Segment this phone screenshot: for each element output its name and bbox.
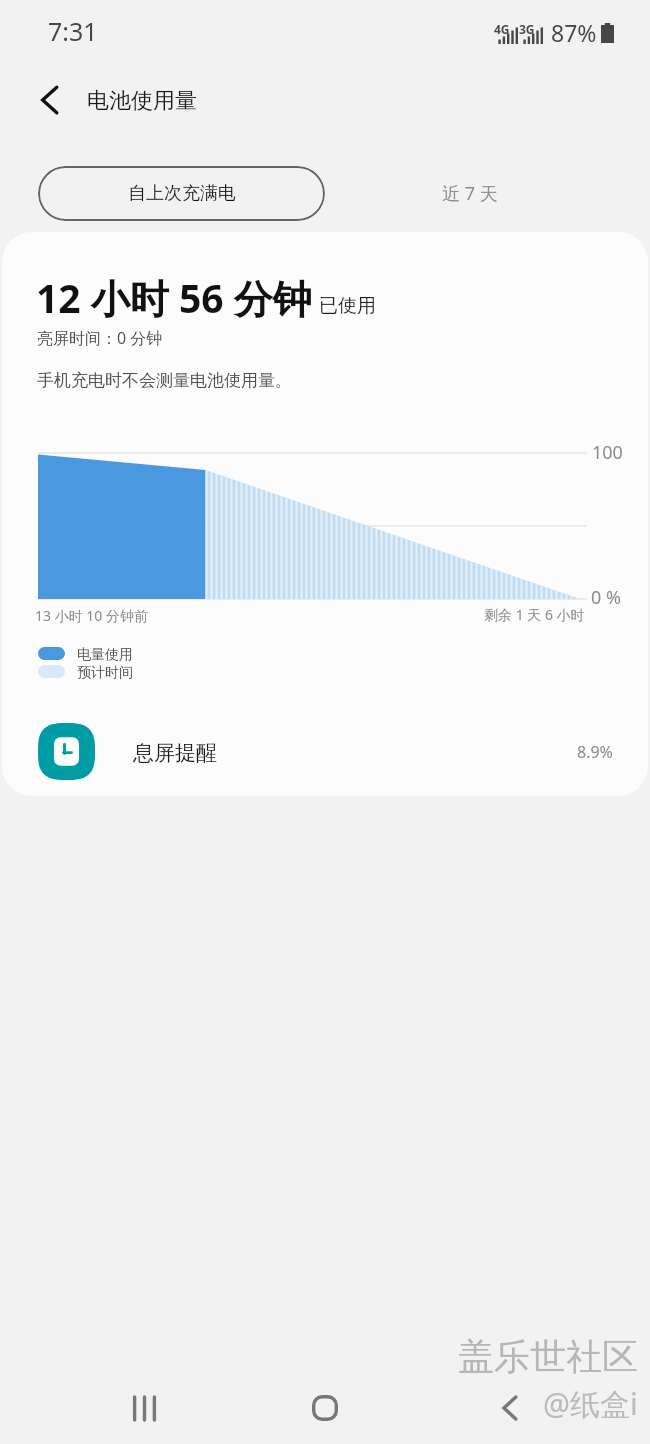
staticText: 预计时间: [77, 664, 133, 682]
button[interactable]: Back: [22, 73, 80, 131]
staticText: 8.9%: [577, 741, 613, 763]
staticText: 电量使用: [77, 646, 133, 664]
staticText: 13 小时 10 分钟前: [35, 606, 148, 625]
button[interactable]: 息屏提醒: [2, 714, 648, 789]
staticText: 3G: [519, 21, 535, 37]
staticText: 4G: [494, 21, 510, 37]
staticText: 剩余 1 天 6 小时: [484, 605, 585, 624]
staticText: 自上次充满电: [128, 182, 236, 205]
button[interactable]: Back: [477, 1374, 545, 1442]
staticText: 手机充电时不会测量电池使用量。: [37, 370, 292, 391]
staticText: 100: [592, 440, 623, 465]
staticText: 87%: [551, 17, 597, 48]
staticText: @纸盒i: [543, 1383, 638, 1424]
staticText: 盖乐世社区: [458, 1334, 638, 1379]
staticText: 亮屏时间：0 分钟: [37, 327, 163, 349]
button[interactable]: Home: [291, 1374, 359, 1442]
button[interactable]: 近 7 天: [390, 166, 550, 221]
staticText: 12 小时 56 分钟: [36, 271, 312, 324]
staticText: 息屏提醒: [133, 740, 217, 766]
button[interactable]: Recents: [110, 1374, 178, 1442]
staticText: 7:31: [48, 14, 98, 48]
staticText: 已使用: [319, 294, 376, 318]
button[interactable]: 自上次充满电: [38, 166, 325, 221]
staticText: 0 %: [591, 585, 621, 610]
staticText: 电池使用量: [87, 87, 197, 115]
staticText: 近 7 天: [442, 181, 498, 206]
